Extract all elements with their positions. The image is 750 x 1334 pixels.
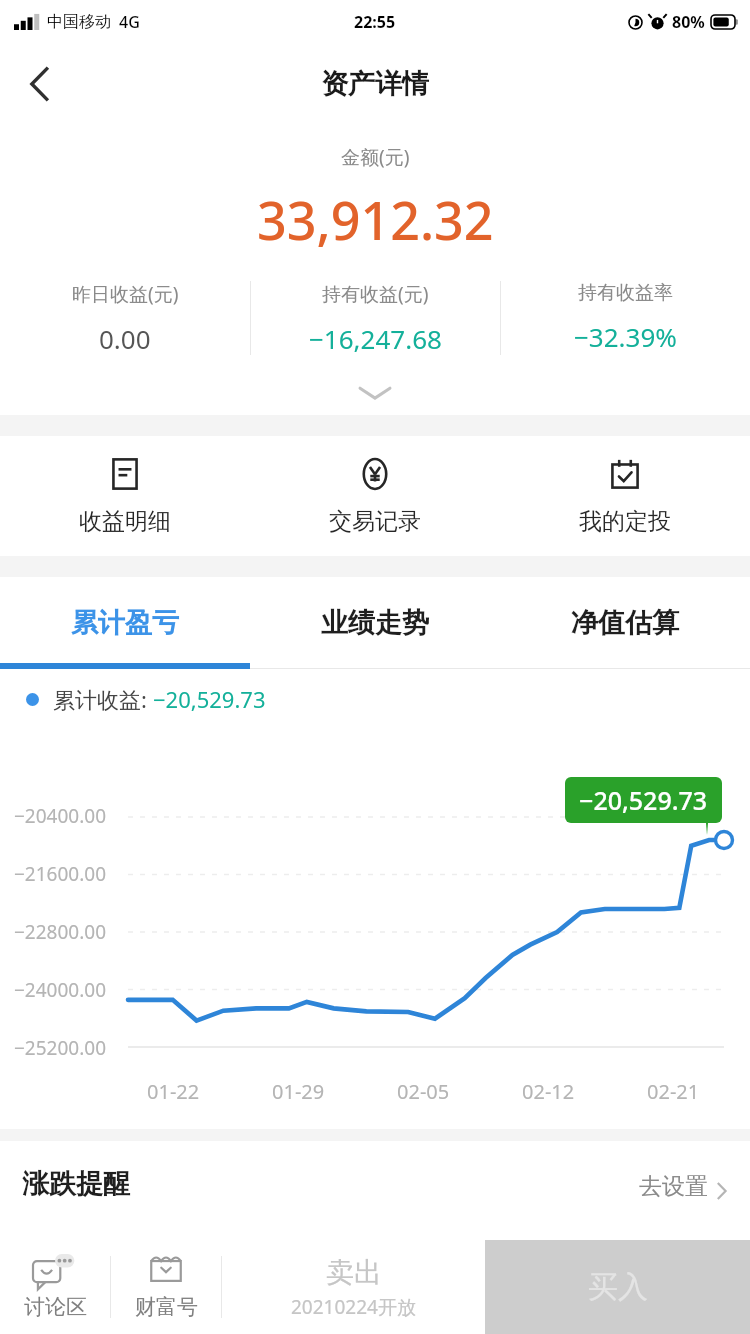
staticText: 交易记录 — [329, 507, 421, 536]
button[interactable]: Back — [10, 54, 70, 114]
staticText: 4G — [119, 11, 140, 33]
staticText: 讨论区 — [24, 1294, 87, 1320]
staticText: −21600.00 — [14, 861, 107, 887]
staticText: 33,912.32 — [257, 184, 494, 255]
staticText: −24000.00 — [14, 977, 107, 1003]
staticText: 业绩走势 — [321, 606, 429, 640]
staticText: 昨日收益(元) — [72, 281, 179, 307]
staticText: 卖出 — [326, 1255, 382, 1290]
button[interactable]: 交易记录 — [250, 436, 500, 556]
staticText: 净值估算 — [571, 606, 679, 640]
button[interactable]: 卖出 — [222, 1240, 485, 1334]
staticText: 财富号 — [135, 1294, 198, 1320]
staticText: −20,529.73 — [579, 783, 708, 817]
button[interactable]: 讨论区 — [0, 1240, 110, 1334]
staticText: −22800.00 — [14, 919, 107, 945]
staticText: 22:55 — [354, 11, 396, 33]
staticText: 累计收益: — [53, 684, 153, 714]
staticText: 持有收益(元) — [322, 281, 429, 307]
staticText: −32.39% — [574, 319, 677, 354]
button[interactable]: 累计盈亏 — [0, 577, 250, 669]
staticText: −25200.00 — [14, 1035, 107, 1061]
staticText: 累计盈亏 — [71, 606, 179, 640]
staticText: 买入 — [588, 1268, 648, 1306]
staticText: 资产详情 — [321, 67, 429, 101]
button[interactable]: 我的定投 — [500, 436, 750, 556]
button[interactable]: 收益明细 — [0, 436, 250, 556]
button[interactable]: 净值估算 — [500, 577, 750, 669]
staticText: 去设置 — [639, 1172, 708, 1201]
button[interactable]: Expand — [0, 371, 750, 415]
staticText: 02-21 — [647, 1078, 700, 1105]
staticText: 收益明细 — [79, 507, 171, 536]
staticText: −20400.00 — [14, 803, 107, 829]
staticText: 01-29 — [272, 1078, 325, 1105]
staticText: 金额(元) — [341, 144, 410, 170]
staticText: 02-05 — [397, 1078, 450, 1105]
staticText: 持有收益率 — [578, 281, 673, 305]
button[interactable]: 财富号 — [111, 1240, 221, 1334]
button[interactable]: 昨日收益(元) — [0, 281, 250, 356]
button[interactable]: 业绩走势 — [250, 577, 500, 669]
staticText: 02-12 — [522, 1078, 575, 1105]
staticText: −20,529.73 — [153, 684, 266, 714]
staticText: 20210224开放 — [291, 1294, 416, 1320]
staticText: 中国移动 — [47, 12, 111, 32]
button[interactable]: 持有收益率 — [501, 281, 750, 354]
staticText: 0.00 — [99, 321, 151, 356]
staticText: 80% — [672, 11, 705, 33]
staticText: 01-22 — [147, 1078, 200, 1105]
button[interactable]: 持有收益(元) — [251, 281, 500, 356]
staticText: −16,247.68 — [309, 321, 442, 356]
staticText: 我的定投 — [579, 507, 671, 536]
staticText: 涨跌提醒 — [22, 1167, 130, 1201]
